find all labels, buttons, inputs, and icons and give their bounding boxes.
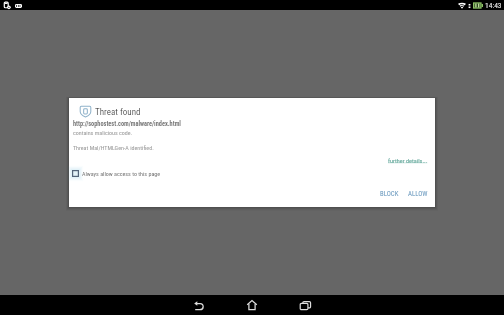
button[interactable]: further details... <box>385 155 431 166</box>
staticText: 14:43 <box>485 1 502 10</box>
staticText: ALLOW <box>408 190 428 198</box>
button[interactable]: Recent apps <box>295 295 315 315</box>
staticText: Threat found <box>95 107 141 118</box>
staticText: BLOCK <box>380 190 399 198</box>
staticText: http://sophostest.com/malware/index.html <box>73 120 181 127</box>
button[interactable]: Home <box>242 295 262 315</box>
staticText: further details... <box>388 157 428 164</box>
staticText: Threat Mal/HTMLGen-A identified. <box>73 144 154 151</box>
button[interactable]: BLOCK <box>376 187 403 201</box>
staticText: contains malicious code. <box>73 129 133 136</box>
staticText: Always allow access to this page <box>82 170 161 177</box>
button[interactable]: Always allow access to this page <box>69 166 162 181</box>
button[interactable]: ALLOW <box>404 187 432 201</box>
button[interactable]: Back <box>189 295 209 315</box>
